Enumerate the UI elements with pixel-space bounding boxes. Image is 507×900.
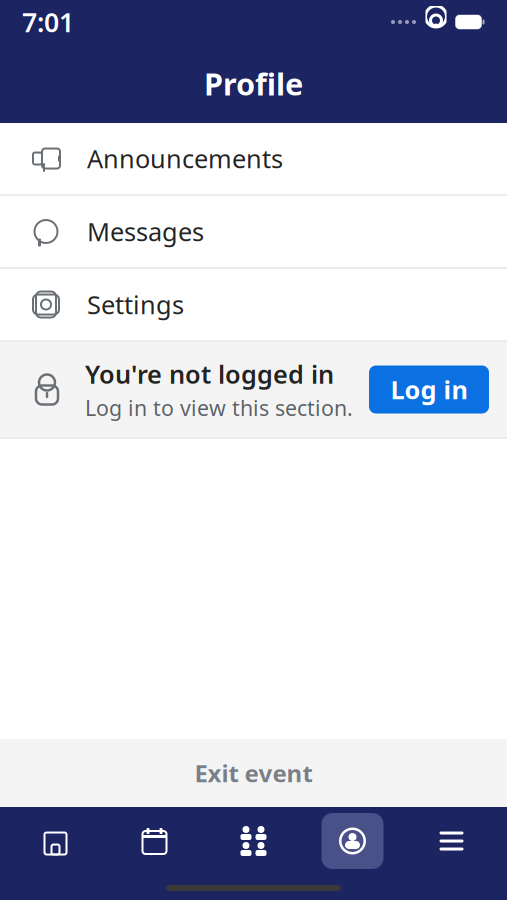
staticText: 7:01: [22, 4, 74, 40]
button[interactable]: Schedule: [105, 813, 204, 869]
staticText: Profile: [204, 63, 303, 104]
staticText: Exit event: [194, 757, 312, 789]
button[interactable]: Exit event: [0, 739, 507, 807]
staticText: Settings: [87, 288, 184, 321]
button[interactable]: More: [402, 813, 501, 869]
staticText: Log in: [390, 373, 467, 406]
button[interactable]: Announcements: [0, 123, 507, 194]
button[interactable]: Profile: [303, 813, 402, 869]
staticText: You're not logged in: [85, 357, 334, 391]
staticText: Log in to view this section.: [85, 394, 353, 422]
staticText: Announcements: [87, 142, 283, 175]
button[interactable]: Messages: [0, 196, 507, 267]
button[interactable]: Home: [6, 813, 105, 869]
button[interactable]: Settings: [0, 269, 507, 340]
staticText: Messages: [87, 215, 204, 248]
button[interactable]: Attendees: [204, 813, 303, 869]
button[interactable]: Log in: [369, 365, 489, 413]
